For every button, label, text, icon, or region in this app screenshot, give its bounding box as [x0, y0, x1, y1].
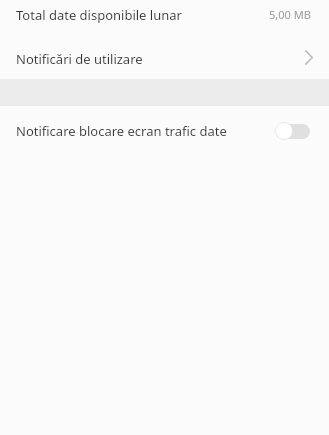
button[interactable]: Notificări de utilizare [0, 31, 329, 79]
staticText: Notificare blocare ecran trafic date [16, 122, 227, 140]
staticText: Notificări de utilizare [16, 50, 143, 68]
other: Open usage notifications [305, 50, 313, 65]
button[interactable]: Notificare blocare ecran trafic date [0, 106, 329, 156]
button[interactable]: Toggle lock screen data notification [275, 122, 310, 140]
button[interactable]: Total date disponibile lunar [0, 0, 329, 31]
staticText: Total date disponibile lunar [16, 6, 182, 24]
staticText: 5,00 MB [269, 7, 311, 22]
